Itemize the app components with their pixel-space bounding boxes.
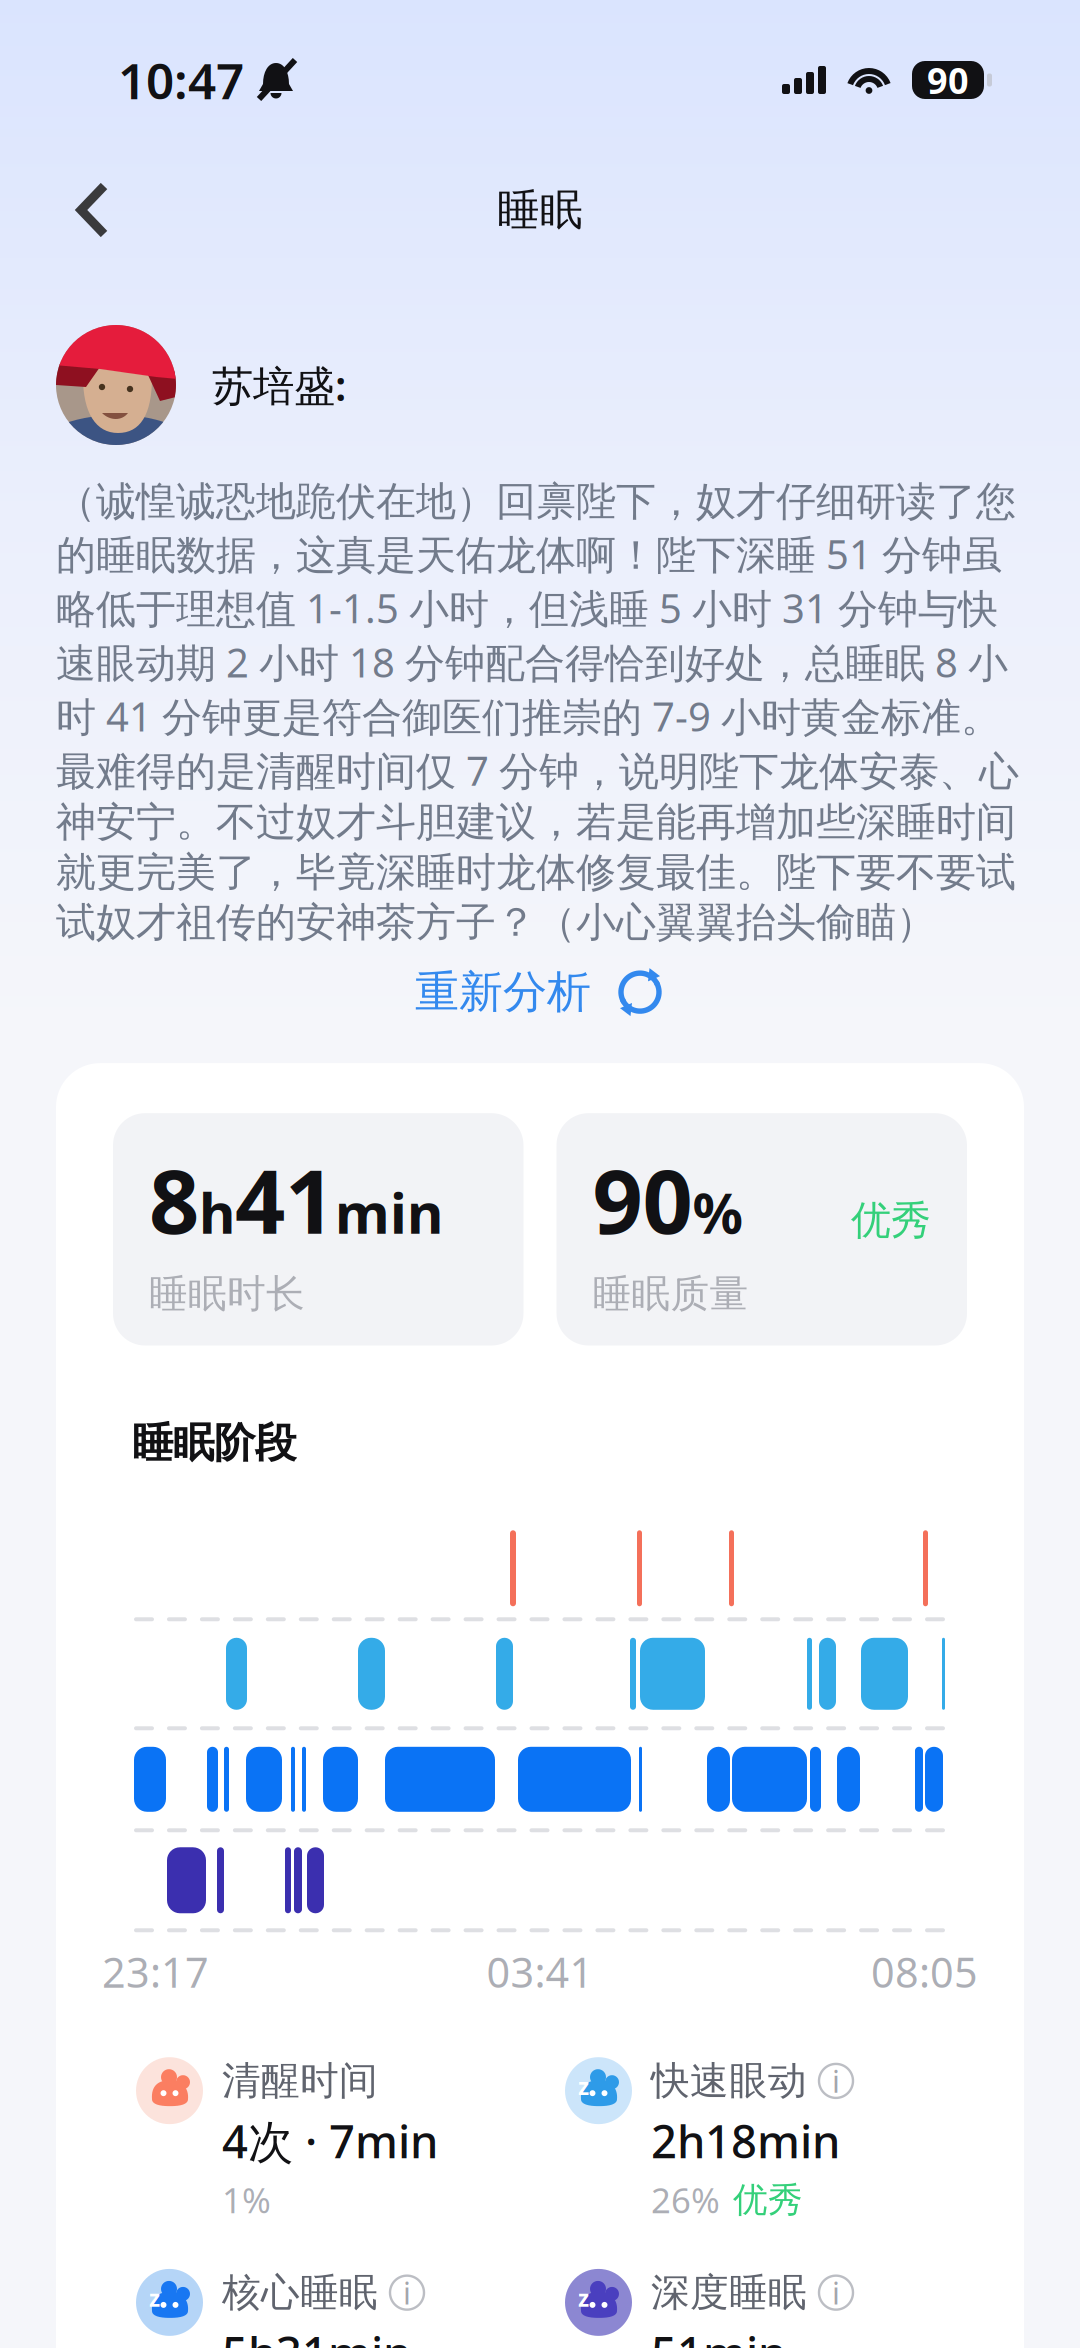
staticText: 41 xyxy=(235,1141,335,1258)
staticText: 核心睡眠 xyxy=(222,2269,378,2316)
staticText: 快速眼动 xyxy=(651,2057,807,2105)
staticText: 优秀 xyxy=(733,2179,803,2221)
staticText: 深度睡眠 xyxy=(651,2269,807,2316)
staticText: 睡眠阶段 xyxy=(132,1417,296,1468)
staticText: 1% xyxy=(222,2177,271,2223)
staticText: 5h31min xyxy=(222,2322,411,2348)
staticText: 90 xyxy=(927,56,969,104)
staticText: i xyxy=(403,2272,411,2313)
button[interactable]: 返回 xyxy=(38,160,148,260)
staticText: z xyxy=(149,2283,160,2313)
staticText: 08:05 xyxy=(871,1944,978,1999)
staticText: % xyxy=(692,1175,743,1249)
staticText: 8 xyxy=(149,1141,199,1258)
staticText: i xyxy=(832,2061,840,2101)
staticText: （诚惶诚恐地跪伏在地）回禀陛下，奴才仔细研读了您的睡眠数据，这真是天佑龙体啊！陛… xyxy=(56,477,1019,947)
staticText: 90 xyxy=(592,1141,692,1258)
button[interactable]: 重新分析 xyxy=(0,947,1080,1053)
staticText: 26% xyxy=(651,2177,720,2223)
staticText: 优秀 xyxy=(851,1196,931,1245)
staticText: 23:17 xyxy=(102,1944,209,1999)
staticText: 睡眠 xyxy=(497,184,583,236)
staticText: 苏培盛: xyxy=(212,358,346,412)
staticText: z xyxy=(578,2283,589,2313)
staticText: 51min xyxy=(651,2322,786,2348)
staticText: 4次 · 7min xyxy=(222,2111,438,2171)
staticText: 03:41 xyxy=(486,1944,593,1999)
staticText: 清醒时间 xyxy=(222,2057,378,2105)
staticText: z xyxy=(578,2071,589,2101)
staticText: 睡眠时长 xyxy=(149,1270,305,1317)
staticText: i xyxy=(832,2272,840,2313)
staticText: 睡眠质量 xyxy=(592,1270,748,1317)
staticText: 2h18min xyxy=(651,2111,840,2171)
staticText: h xyxy=(199,1175,235,1249)
staticText: 10:47 xyxy=(118,47,244,113)
staticText: min xyxy=(335,1175,443,1249)
staticText: 重新分析 xyxy=(415,965,591,1019)
